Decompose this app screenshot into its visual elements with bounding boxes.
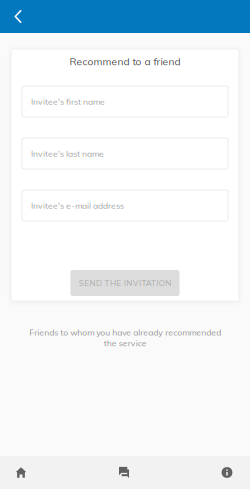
staticText: Recommend to a friend (69, 55, 180, 68)
button[interactable]: SEND THE INVITATION (70, 270, 179, 296)
button[interactable]: Back (3, 0, 33, 33)
staticText: SEND THE INVITATION (79, 278, 171, 288)
staticText: Invitee's last name (31, 148, 104, 159)
staticText: Invitee's first name (31, 96, 105, 107)
button[interactable]: Information (206, 456, 248, 489)
staticText: Friends to whom you have already recomme… (29, 327, 221, 348)
staticText: Invitee's e-mail address (31, 200, 124, 211)
button[interactable]: Messages (103, 456, 145, 489)
button[interactable]: Home (0, 456, 42, 489)
